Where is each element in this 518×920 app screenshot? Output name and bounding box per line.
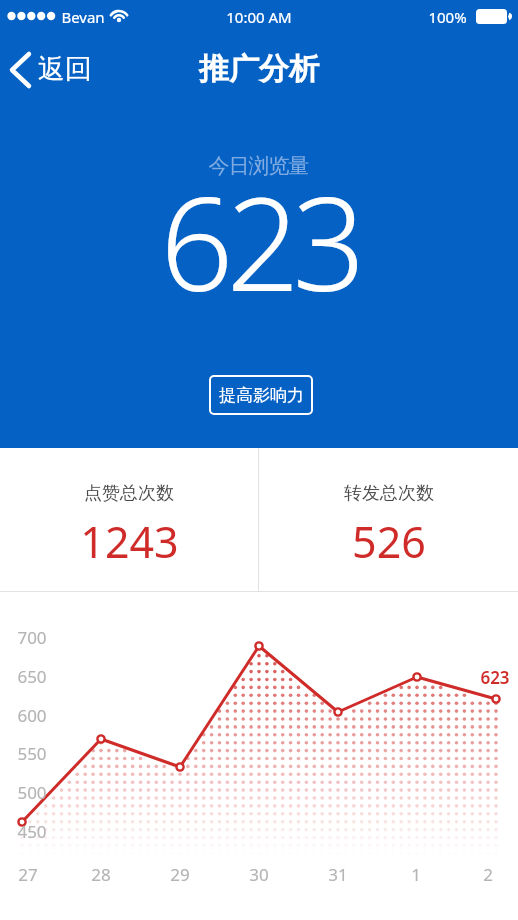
staticText: 1243 — [80, 512, 179, 571]
button[interactable]: 点赞总次数 — [0, 448, 258, 592]
staticText: 526 — [352, 512, 426, 571]
staticText: 28 — [91, 863, 111, 886]
staticText: 550 — [17, 742, 47, 765]
staticText: 100% — [428, 7, 467, 27]
staticText: Bevan — [61, 7, 105, 27]
button[interactable]: 返回 — [0, 51, 92, 87]
button[interactable]: 转发总次数 — [259, 448, 518, 592]
staticText: 点赞总次数 — [84, 482, 174, 505]
staticText: 转发总次数 — [344, 482, 434, 505]
staticText: 623 — [160, 154, 359, 328]
staticText: 30 — [249, 863, 269, 886]
staticText: 450 — [17, 820, 47, 843]
staticText: 29 — [170, 863, 190, 886]
staticText: 提高影响力 — [219, 385, 304, 406]
staticText: 31 — [328, 863, 348, 886]
staticText: 2 — [483, 863, 493, 886]
staticText: 500 — [17, 781, 47, 804]
button[interactable]: 提高影响力 — [209, 375, 313, 415]
staticText: 1 — [411, 863, 421, 886]
staticText: 返回 — [38, 52, 92, 86]
staticText: 650 — [17, 665, 47, 688]
staticText: 600 — [17, 704, 47, 727]
staticText: 10:00 AM — [226, 7, 292, 27]
staticText: 27 — [18, 863, 38, 886]
staticText: 今日浏览量 — [209, 153, 309, 179]
staticText: 623 — [480, 666, 510, 689]
staticText: 推广分析 — [199, 50, 319, 88]
staticText: 700 — [17, 626, 47, 649]
